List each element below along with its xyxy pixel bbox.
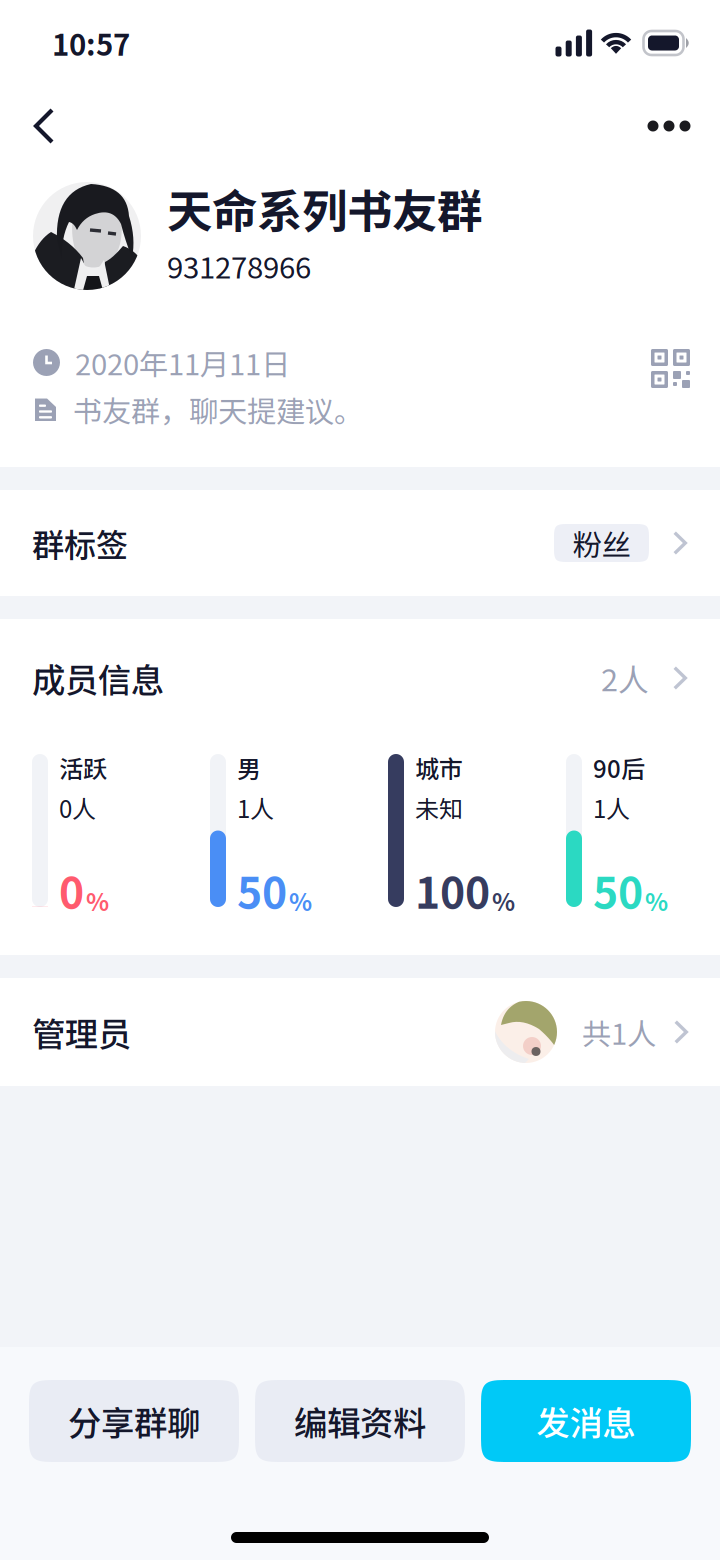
button[interactable]: 分享群聊 (29, 1380, 239, 1462)
staticText: 10:57 (52, 22, 130, 64)
staticText: 0人 (59, 790, 96, 825)
staticText: 2020年11月11日 (75, 341, 290, 384)
staticText: % (645, 883, 668, 918)
staticText: % (492, 883, 515, 918)
staticText: 931278966 (167, 244, 311, 287)
staticText: 编辑资料 (294, 1397, 426, 1445)
staticText: 未知 (415, 790, 463, 825)
staticText: 天命系列书友群 (167, 175, 482, 241)
staticText: 50 (237, 859, 287, 921)
staticText: 100 (415, 859, 490, 921)
staticText: 分享群聊 (68, 1397, 200, 1445)
staticText: 2人 (601, 656, 649, 700)
staticText: % (289, 883, 312, 918)
staticText: 粉丝 (572, 522, 630, 564)
button[interactable]: 成员信息 (0, 619, 720, 737)
staticText: 发消息 (536, 1397, 635, 1445)
staticText: 成员信息 (32, 654, 164, 702)
staticText: 50 (593, 859, 643, 921)
button[interactable]: More options (630, 91, 708, 161)
button[interactable]: 发消息 (481, 1380, 691, 1462)
button[interactable]: 管理员 (0, 978, 720, 1086)
button[interactable]: 编辑资料 (255, 1380, 465, 1462)
staticText: 管理员 (32, 1008, 131, 1056)
staticText: 男 (237, 750, 261, 785)
button[interactable]: 群标签 (0, 490, 720, 596)
staticText: 1人 (593, 790, 630, 825)
staticText: 90后 (593, 750, 645, 785)
button[interactable]: Group QR code (642, 349, 690, 397)
staticText: 城市 (415, 750, 463, 785)
staticText: 群标签 (32, 520, 128, 566)
staticText: 活跃 (59, 750, 107, 785)
staticText: 书友群，聊天提建议。 (73, 388, 363, 431)
staticText: 0 (59, 859, 84, 921)
button[interactable]: Back (12, 91, 76, 161)
staticText: 共1人 (582, 1011, 656, 1053)
staticText: 1人 (237, 790, 274, 825)
staticText: % (86, 883, 109, 918)
